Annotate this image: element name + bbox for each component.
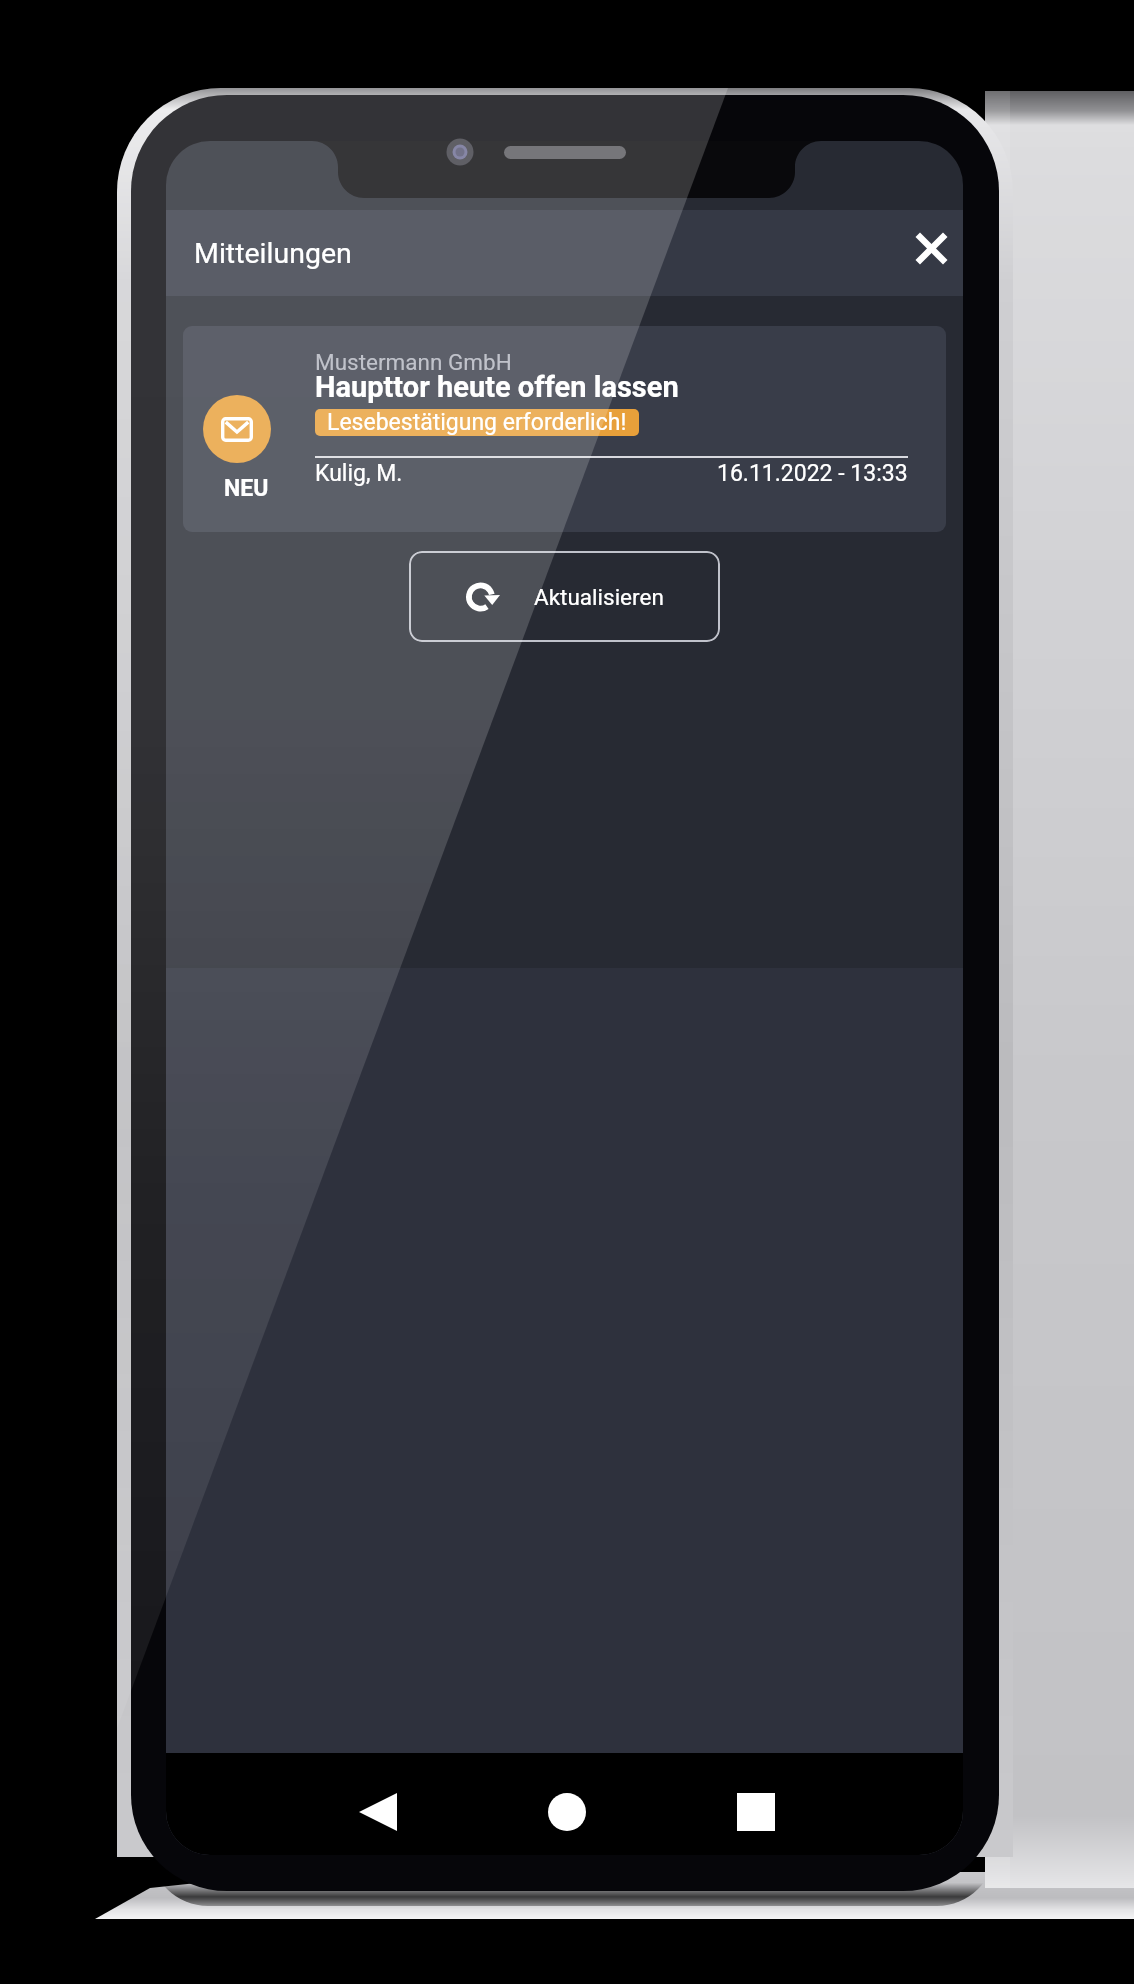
staticText: Lesebestätigung erforderlich!: [327, 409, 627, 436]
button[interactable]: Zurück: [332, 1766, 423, 1855]
staticText: Mustermann GmbH: [315, 349, 512, 375]
button[interactable]: Übersicht: [710, 1766, 801, 1855]
button[interactable]: Schließen: [899, 216, 963, 280]
staticText: 16.11.2022 - 13:33: [717, 460, 908, 487]
staticText: Mitteilungen: [194, 237, 352, 270]
button[interactable]: NEU: [183, 326, 946, 532]
button[interactable]: Startseite: [521, 1766, 612, 1855]
staticText: Aktualisieren: [534, 584, 664, 610]
staticText: Haupttor heute offen lassen: [315, 370, 679, 404]
staticText: NEU: [224, 475, 269, 502]
staticText: Kulig, M.: [315, 460, 403, 487]
button[interactable]: Aktualisieren: [409, 551, 720, 642]
